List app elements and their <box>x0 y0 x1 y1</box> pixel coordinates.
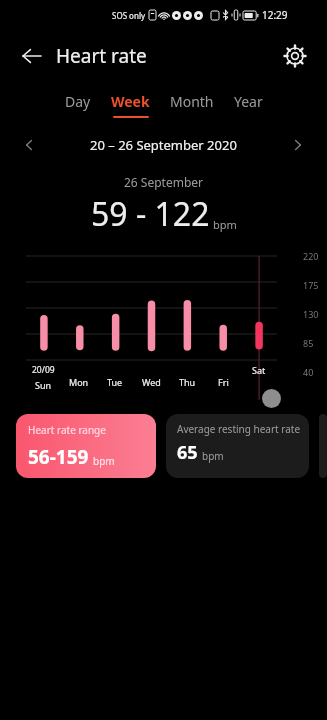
staticText: 20/09 <box>32 364 55 376</box>
staticText: 130 <box>303 308 319 320</box>
button[interactable]: Settings <box>275 36 315 76</box>
staticText: 220 <box>303 250 319 262</box>
staticText: 56-159 <box>28 444 89 470</box>
staticText: Day <box>65 92 91 111</box>
staticText: 175 <box>303 279 319 291</box>
staticText: Tue <box>107 376 123 388</box>
button[interactable]: Week <box>111 92 150 118</box>
staticText: 59 - 122 <box>91 192 210 236</box>
staticText: 40 <box>303 366 314 378</box>
staticText: Year <box>234 92 263 111</box>
staticText: Fri <box>218 376 229 388</box>
button[interactable]: Month <box>170 92 214 118</box>
staticText: 65 <box>177 440 198 465</box>
staticText: Average resting heart rate <box>177 422 301 436</box>
button[interactable]: Back <box>12 36 52 76</box>
staticText: Week <box>111 92 150 111</box>
staticText: Heart rate range <box>28 423 106 437</box>
staticText: Sat <box>252 364 266 376</box>
staticText: Month <box>170 92 214 111</box>
button[interactable]: Year <box>234 92 263 118</box>
staticText: Thu <box>179 376 196 388</box>
staticText: 85 <box>303 337 314 349</box>
staticText: bpm <box>202 449 224 463</box>
staticText: Wed <box>142 376 161 388</box>
staticText: 20 – 26 September 2020 <box>90 136 237 154</box>
button[interactable]: Average resting heart rate <box>166 414 309 478</box>
staticText: Heart rate <box>56 43 147 69</box>
button[interactable]: Next week <box>283 130 313 160</box>
staticText: bpm <box>93 454 115 468</box>
staticText: 12:29 <box>262 8 288 22</box>
staticText: SOS only <box>112 10 146 21</box>
staticText: 26 September <box>124 174 204 190</box>
staticText: bpm <box>213 217 237 232</box>
button[interactable] <box>319 414 327 478</box>
button[interactable]: Heart rate range <box>16 414 156 478</box>
button[interactable]: Previous week <box>14 130 44 160</box>
button[interactable]: Day <box>65 92 91 118</box>
staticText: Sun <box>35 379 52 391</box>
staticText: Mon <box>69 376 89 388</box>
button[interactable]: Selected day <box>262 389 281 408</box>
